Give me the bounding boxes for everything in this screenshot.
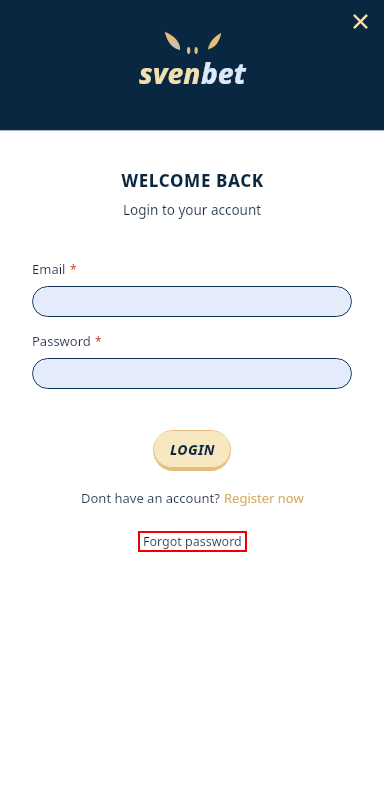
button[interactable]: Dont have an account?: [81, 489, 304, 507]
button[interactable]: Forgot password: [138, 531, 247, 552]
button[interactable]: Close: [344, 5, 376, 37]
staticText: *: [70, 261, 77, 277]
staticText: LOGIN: [170, 440, 215, 459]
button[interactable]: Svenbet: [139, 31, 246, 92]
staticText: Register now: [224, 489, 304, 507]
staticText: *: [95, 333, 102, 349]
staticText: WELCOME BACK: [121, 169, 264, 192]
staticText: Login to your account: [123, 201, 262, 219]
button[interactable]: Email: [32, 286, 352, 317]
staticText: sven: [139, 54, 201, 92]
staticText: Dont have an account?: [81, 489, 224, 507]
staticText: Forgot password: [143, 533, 242, 550]
staticText: bet: [201, 54, 246, 92]
button[interactable]: Password: [32, 358, 352, 389]
staticText: Password: [32, 332, 91, 350]
button[interactable]: LOGIN: [153, 430, 231, 471]
staticText: Email: [32, 260, 66, 278]
